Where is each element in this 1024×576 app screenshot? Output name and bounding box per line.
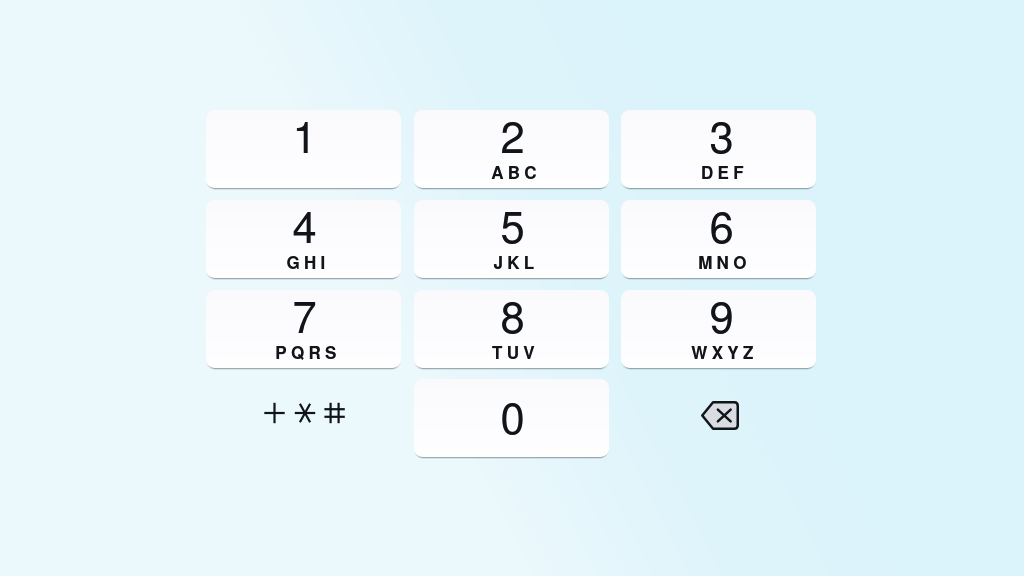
staticText: 4 bbox=[292, 200, 317, 255]
staticText: 6 bbox=[709, 200, 734, 255]
staticText: 0 bbox=[500, 384, 525, 446]
staticText: 1 bbox=[292, 110, 317, 165]
staticText: WXYZ bbox=[691, 340, 758, 364]
staticText: 5 bbox=[500, 200, 525, 255]
staticText: TUV bbox=[492, 340, 539, 364]
staticText: WXYZ bbox=[691, 340, 758, 364]
staticText: 3 bbox=[709, 110, 734, 165]
staticText: 3 bbox=[709, 110, 734, 165]
staticText: DEF bbox=[701, 160, 748, 184]
staticText: PQRS bbox=[275, 340, 341, 364]
button[interactable]: 4 bbox=[206, 200, 401, 278]
staticText: 2 bbox=[500, 110, 525, 165]
button[interactable]: 0 bbox=[414, 379, 609, 457]
button[interactable]: 5 bbox=[414, 200, 609, 278]
staticText: 6 bbox=[709, 200, 734, 255]
staticText: JKL bbox=[493, 250, 539, 274]
staticText: PQRS bbox=[275, 340, 341, 364]
staticText: 8 bbox=[500, 290, 525, 345]
button[interactable]: 3 bbox=[621, 110, 816, 188]
button[interactable]: 2 bbox=[414, 110, 609, 188]
staticText: ABC bbox=[491, 160, 541, 184]
button[interactable]: 8 bbox=[414, 290, 609, 368]
button[interactable]: 1 bbox=[206, 110, 401, 188]
staticText: 4 bbox=[292, 200, 317, 255]
button[interactable]: 9 bbox=[621, 290, 816, 368]
staticText: TUV bbox=[492, 340, 539, 364]
button[interactable]: 7 bbox=[206, 290, 401, 368]
staticText: DEF bbox=[701, 160, 748, 184]
staticText: 1 bbox=[292, 110, 317, 165]
staticText: GHI bbox=[286, 250, 330, 274]
button[interactable]: Plus, star, hash bbox=[206, 379, 401, 457]
staticText: MNO bbox=[698, 250, 751, 274]
staticText: 2 bbox=[500, 110, 525, 165]
staticText: 7 bbox=[292, 290, 317, 345]
staticText: 7 bbox=[292, 290, 317, 345]
staticText: 5 bbox=[500, 200, 525, 255]
staticText: 0 bbox=[500, 384, 525, 446]
staticText: JKL bbox=[493, 250, 539, 274]
staticText: 8 bbox=[500, 290, 525, 345]
staticText: 9 bbox=[709, 290, 734, 345]
button[interactable]: 6 bbox=[621, 200, 816, 278]
staticText: GHI bbox=[286, 250, 330, 274]
staticText: ABC bbox=[491, 160, 541, 184]
staticText: 9 bbox=[709, 290, 734, 345]
button[interactable]: Backspace bbox=[621, 379, 816, 457]
staticText: MNO bbox=[698, 250, 751, 274]
